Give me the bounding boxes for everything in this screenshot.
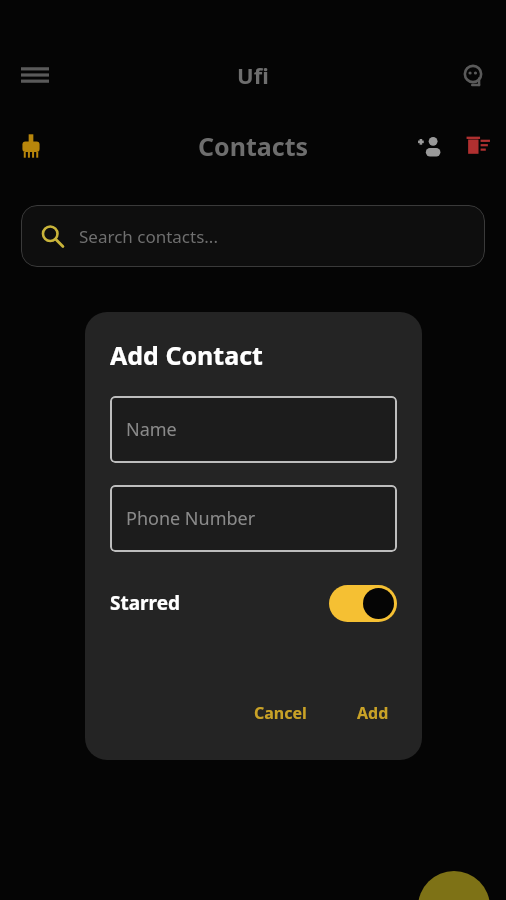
staticText: Add Contact	[110, 338, 263, 372]
button[interactable]: Theme	[6, 121, 56, 171]
staticText: Search contacts...	[79, 225, 218, 248]
staticText: Cancel	[254, 702, 307, 724]
staticText: Starred	[110, 590, 181, 616]
button[interactable]: Cancel	[246, 696, 315, 730]
button[interactable]: Delete	[454, 122, 502, 170]
staticText: Add	[357, 702, 389, 724]
staticText: Phone Number	[126, 506, 256, 531]
button[interactable]: Add	[349, 696, 397, 730]
staticText: Contacts	[198, 129, 309, 163]
button[interactable]: Phone Number	[110, 485, 397, 552]
button[interactable]: Add contact	[406, 122, 454, 170]
button[interactable]: Support	[450, 52, 496, 98]
button[interactable]: Menu	[12, 52, 58, 98]
button[interactable]: Add	[418, 871, 490, 900]
button[interactable]: Starred toggle	[329, 585, 397, 622]
button[interactable]: Search contacts...	[21, 205, 485, 267]
staticText: Name	[126, 417, 177, 442]
button[interactable]: Name	[110, 396, 397, 463]
staticText: Ufi	[237, 60, 269, 90]
